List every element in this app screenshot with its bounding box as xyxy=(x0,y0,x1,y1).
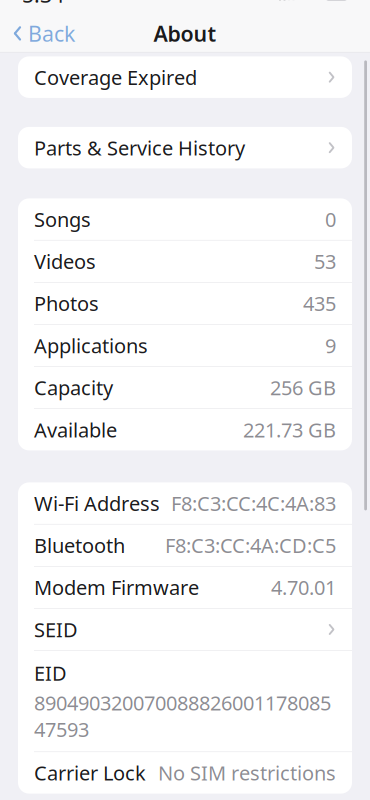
staticText: 4.70.01 xyxy=(271,574,336,601)
staticText: 53 xyxy=(314,248,336,275)
staticText: 221.73 GB xyxy=(243,416,336,443)
staticText: Available xyxy=(34,416,117,443)
staticText: Back xyxy=(28,19,75,47)
staticText: Carrier Lock xyxy=(34,760,146,786)
staticText: Photos xyxy=(34,290,99,317)
staticText: Parts & Service History xyxy=(34,134,245,161)
staticText: F8:C3:CC:4C:4A:83 xyxy=(171,490,336,516)
staticText: No SIM restrictions xyxy=(158,760,336,786)
button[interactable]: SEID xyxy=(18,609,352,650)
staticText: Wi-Fi Address xyxy=(34,490,160,516)
staticText: 9 xyxy=(325,332,336,359)
button[interactable]: Coverage Expired xyxy=(18,56,352,98)
staticText: 5:34 xyxy=(22,0,64,8)
staticText: Applications xyxy=(34,332,148,359)
staticText: F8:C3:CC:4A:CD:C5 xyxy=(165,532,336,559)
staticText: EID xyxy=(34,660,67,686)
staticText: 89049032007008882600117808547593 xyxy=(34,689,331,742)
staticText: SEID xyxy=(34,616,78,643)
staticText: 0 xyxy=(325,206,336,232)
staticText: Capacity xyxy=(34,374,113,401)
staticText: 256 GB xyxy=(270,374,336,401)
staticText: Videos xyxy=(34,248,96,275)
staticText: Coverage Expired xyxy=(34,64,197,90)
staticText: Bluetooth xyxy=(34,532,125,559)
button[interactable]: Parts & Service History xyxy=(18,127,352,168)
staticText: 435 xyxy=(303,290,336,317)
staticText: About xyxy=(153,19,216,47)
staticText: Modem Firmware xyxy=(34,574,199,601)
button[interactable]: Back xyxy=(0,13,85,53)
staticText: Songs xyxy=(34,206,91,232)
